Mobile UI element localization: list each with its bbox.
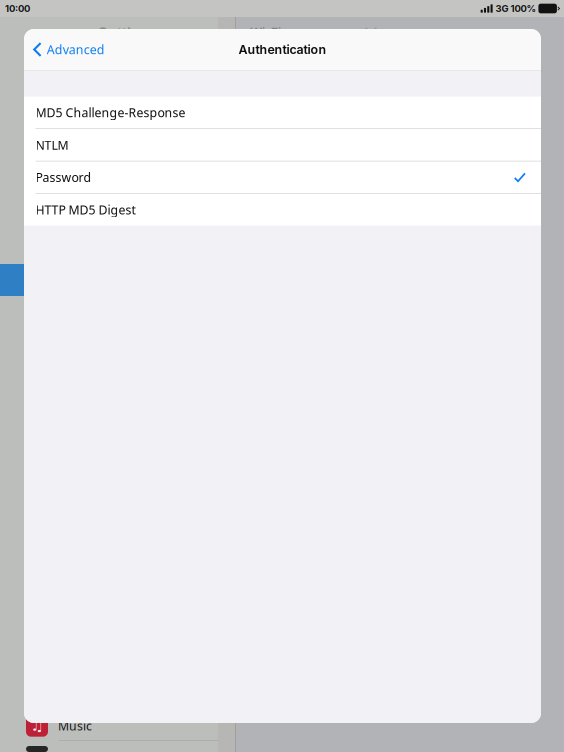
staticText: 3G 100% bbox=[493, 3, 538, 14]
staticText: Authentication bbox=[238, 42, 326, 57]
staticText: MD5 Challenge-Response bbox=[35, 104, 185, 121]
staticText: ♫ bbox=[30, 717, 43, 734]
button[interactable]: MD5 Challenge-Response bbox=[24, 97, 541, 128]
staticText: Password bbox=[35, 169, 91, 186]
button[interactable]: HTTP MD5 Digest bbox=[24, 194, 541, 226]
button[interactable]: NTLM bbox=[24, 129, 541, 161]
staticText: Music bbox=[58, 717, 92, 734]
staticText: Settings bbox=[98, 24, 157, 42]
button[interactable]: Password bbox=[24, 161, 541, 193]
staticText: 10:00 bbox=[5, 3, 30, 14]
staticText: NTLM bbox=[35, 136, 68, 153]
staticText: AA bbox=[362, 25, 380, 39]
button[interactable]: Advanced bbox=[24, 29, 115, 70]
staticText: Wi-Fi bbox=[250, 25, 281, 39]
staticText: HTTP MD5 Digest bbox=[35, 201, 135, 218]
staticText: Advanced bbox=[47, 41, 105, 58]
